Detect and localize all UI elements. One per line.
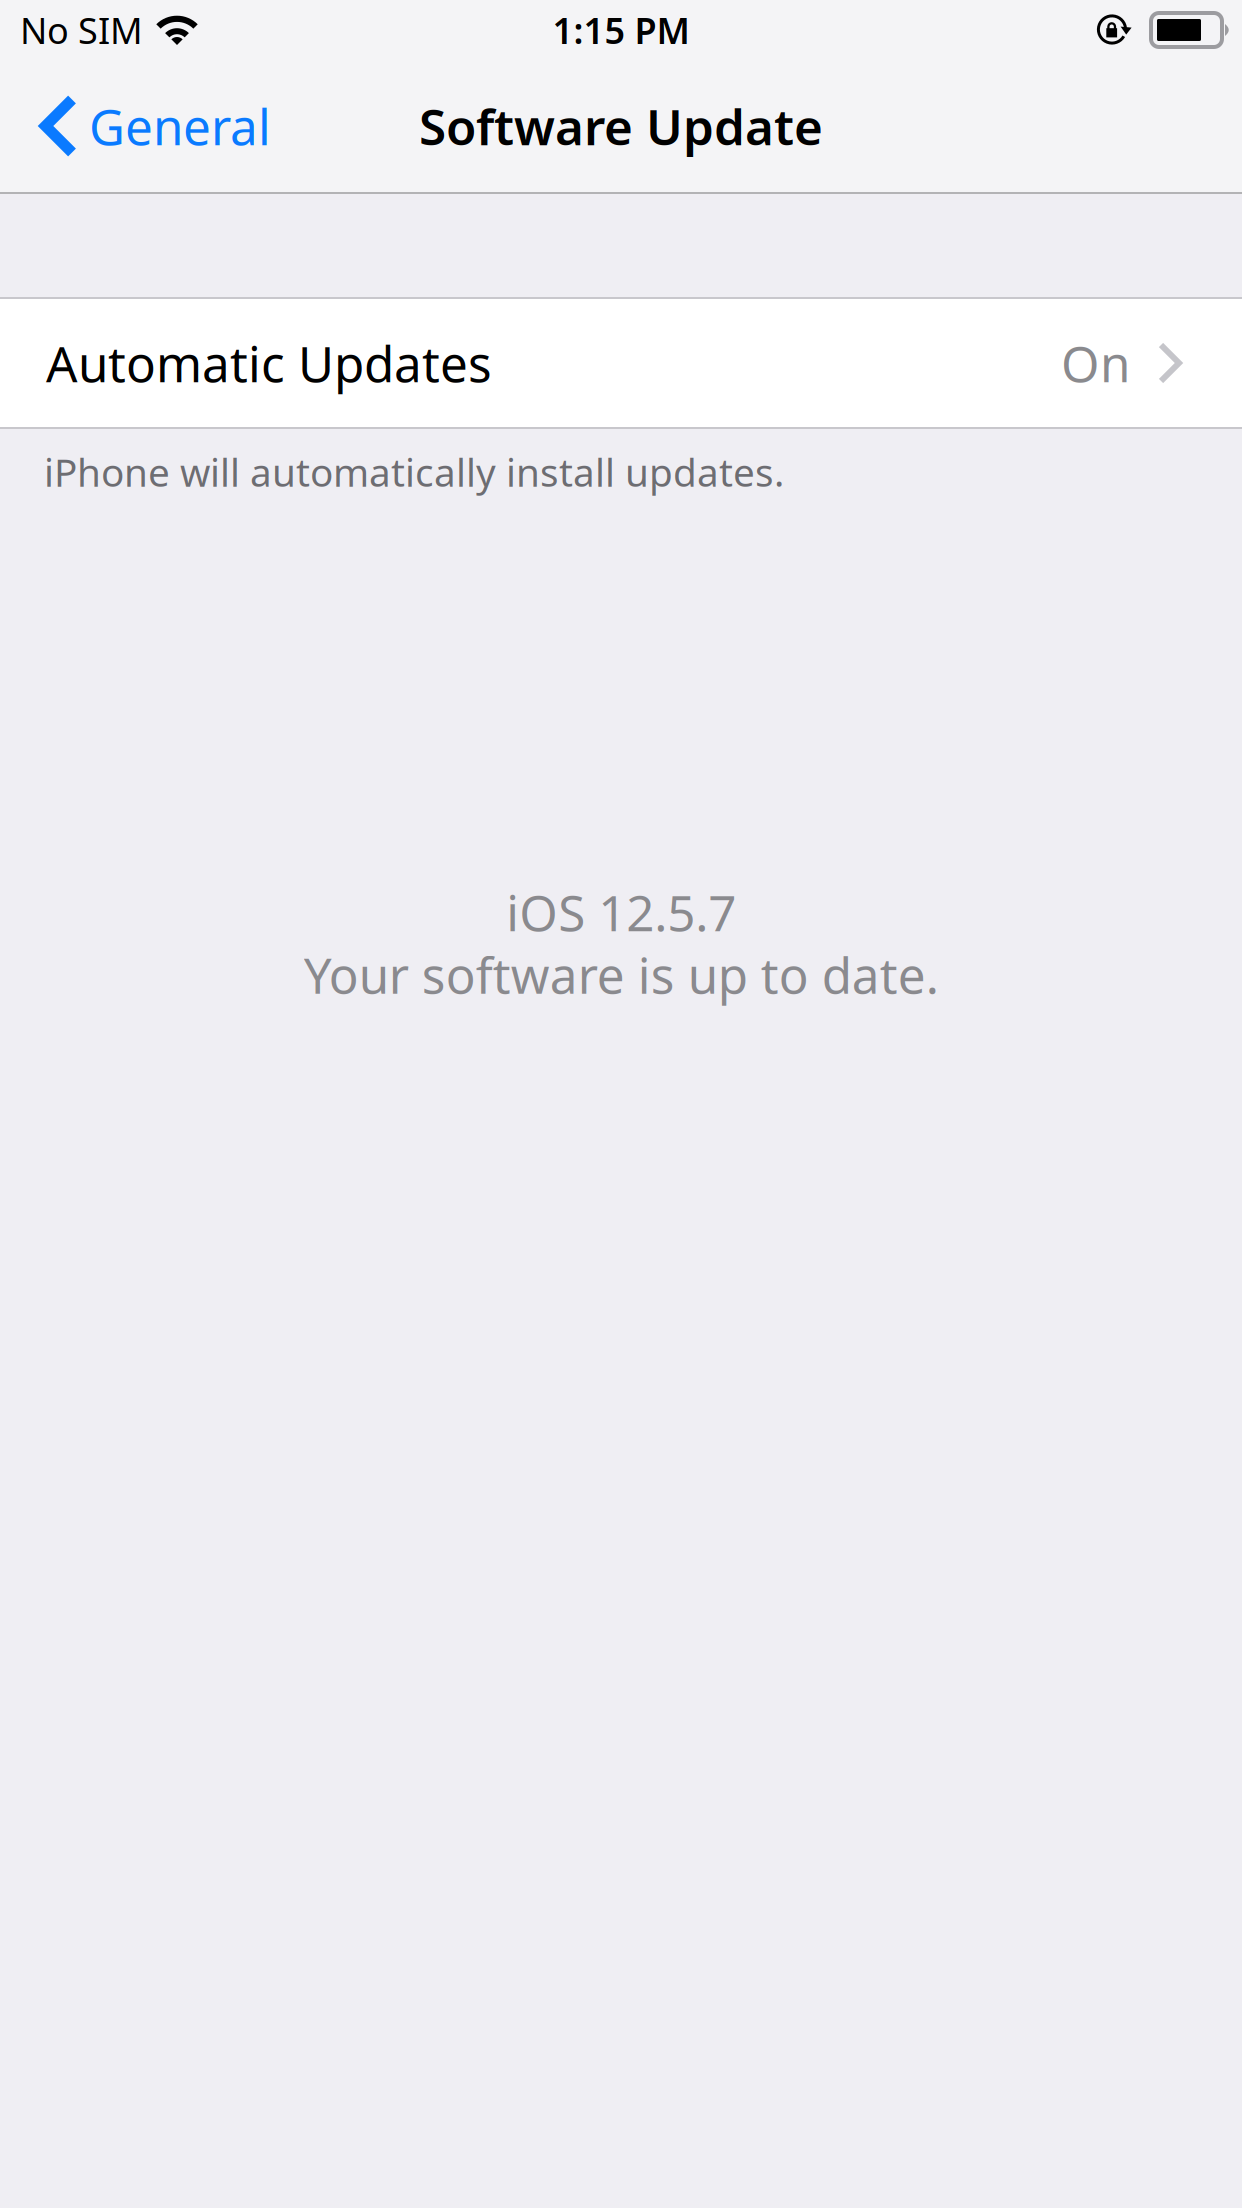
staticText: On [1061,330,1130,396]
staticText: General [89,93,271,159]
button[interactable]: Automatic Updates [0,299,1242,427]
staticText: Automatic Updates [46,330,492,396]
staticText: iOS 12.5.7 Your software is up to date. [303,879,938,1007]
staticText: No SIM [20,6,143,54]
staticText: Software Update [419,93,823,159]
button[interactable]: Back to General [0,60,295,192]
staticText: 1:15 PM [552,6,689,54]
staticText: iPhone will automatically install update… [44,446,784,497]
